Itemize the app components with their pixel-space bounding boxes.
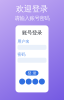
staticText: 请输入账号密码 (14, 15, 49, 21)
staticText: 账号登录 (22, 29, 42, 36)
staticText: 登 录 (27, 71, 36, 75)
staticText: 密码 (17, 52, 25, 57)
staticText: 用户名 (17, 39, 29, 44)
staticText: 欢迎登录 (16, 4, 48, 14)
button[interactable]: 登 录 (25, 71, 38, 76)
